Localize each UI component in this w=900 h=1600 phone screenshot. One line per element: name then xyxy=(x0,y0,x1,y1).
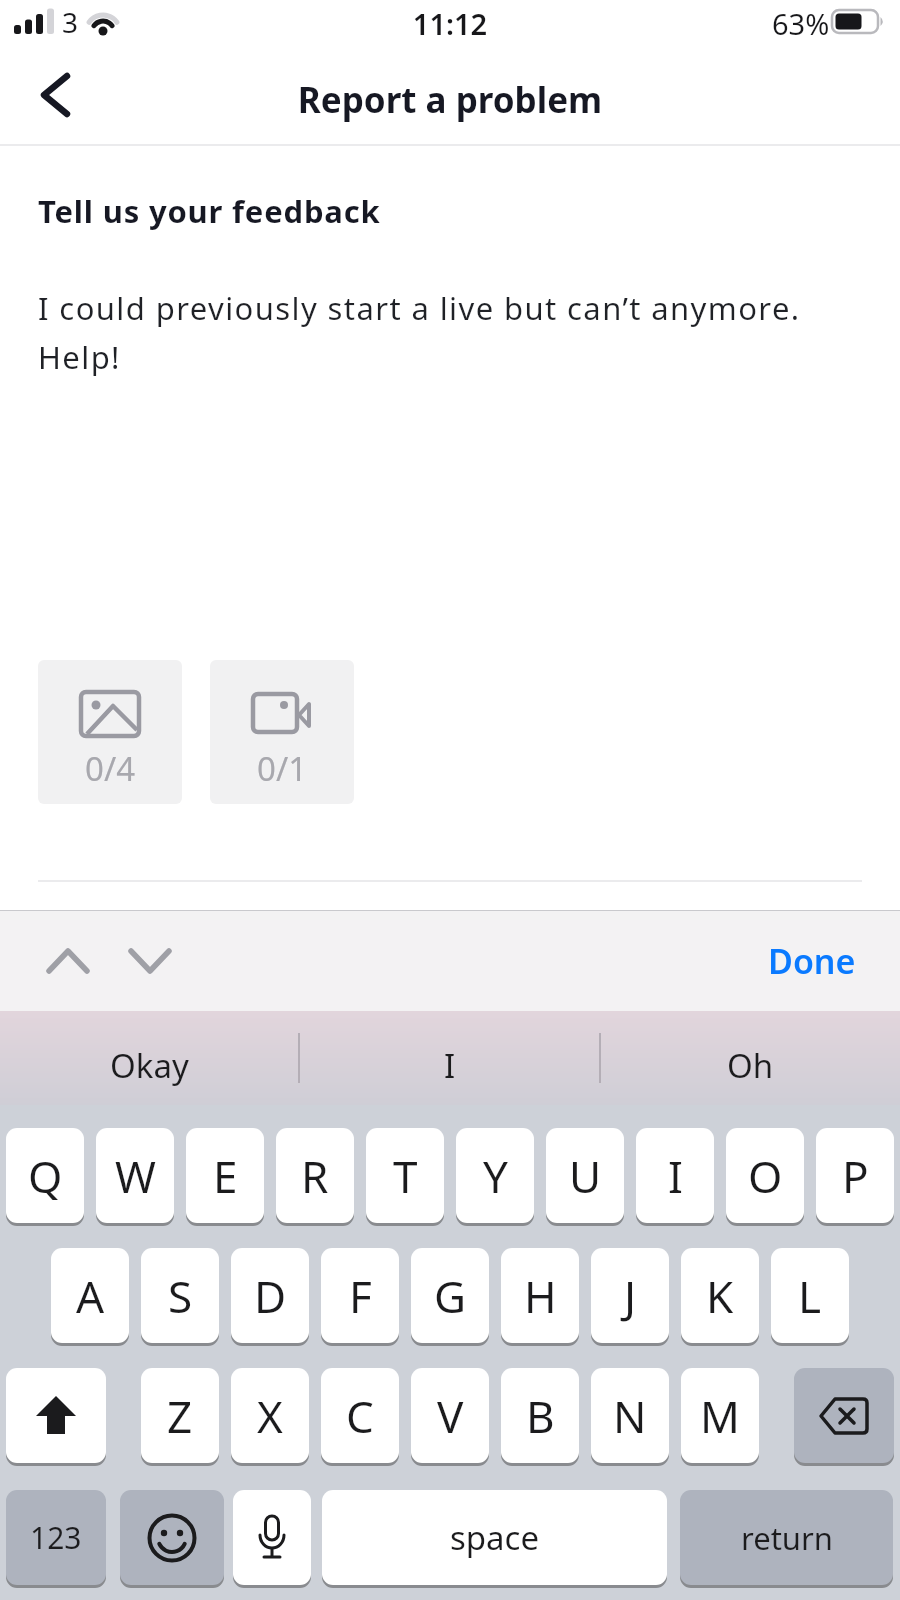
staticText: Okay xyxy=(110,1043,189,1088)
button[interactable]: space xyxy=(322,1490,667,1585)
staticText: Oh xyxy=(727,1043,774,1088)
button[interactable]: 0/4 xyxy=(38,660,182,804)
button[interactable]: 123 xyxy=(6,1490,106,1585)
button[interactable]: return xyxy=(680,1490,893,1585)
staticText: F xyxy=(349,1266,372,1326)
staticText: 123 xyxy=(30,1517,82,1558)
staticText: 11:12 xyxy=(0,4,900,43)
button[interactable]: Y xyxy=(456,1128,534,1223)
button[interactable]: Okay xyxy=(0,1011,298,1105)
staticText: U xyxy=(569,1146,602,1206)
staticText: Done xyxy=(768,938,856,984)
button[interactable] xyxy=(120,1490,224,1585)
staticText: C xyxy=(346,1386,374,1446)
button[interactable]: P xyxy=(816,1128,894,1223)
button[interactable]: Oh xyxy=(601,1011,900,1105)
button[interactable]: J xyxy=(591,1248,669,1343)
staticText: T xyxy=(393,1146,418,1206)
button[interactable]: C xyxy=(321,1368,399,1463)
staticText: J xyxy=(624,1266,637,1326)
staticText: Y xyxy=(483,1146,508,1206)
button[interactable] xyxy=(6,1368,106,1463)
staticText: I xyxy=(444,1043,456,1088)
staticText: M xyxy=(700,1386,740,1446)
staticText: I could previously start a live but can’… xyxy=(38,287,801,379)
button[interactable]: K xyxy=(681,1248,759,1343)
staticText: space xyxy=(450,1515,540,1560)
staticText: E xyxy=(213,1146,238,1206)
button[interactable]: V xyxy=(411,1368,489,1463)
button[interactable]: Z xyxy=(141,1368,219,1463)
staticText: S xyxy=(168,1266,193,1326)
button[interactable]: A xyxy=(51,1248,129,1343)
staticText: H xyxy=(524,1266,557,1326)
button[interactable]: Done xyxy=(768,938,856,984)
button[interactable]: O xyxy=(726,1128,804,1223)
button[interactable]: 0/1 xyxy=(210,660,354,804)
staticText: L xyxy=(798,1266,822,1326)
staticText: G xyxy=(434,1266,467,1326)
staticText: D xyxy=(254,1266,287,1326)
button[interactable]: W xyxy=(96,1128,174,1223)
button[interactable]: Q xyxy=(6,1128,84,1223)
staticText: W xyxy=(115,1146,156,1206)
staticText: Tell us your feedback xyxy=(38,190,381,232)
button[interactable]: N xyxy=(591,1368,669,1463)
staticText: Report a problem xyxy=(0,76,900,124)
button[interactable]: R xyxy=(276,1128,354,1223)
button[interactable]: L xyxy=(771,1248,849,1343)
staticText: Q xyxy=(28,1146,63,1206)
staticText: R xyxy=(301,1146,329,1206)
staticText: B xyxy=(526,1386,555,1446)
button[interactable]: D xyxy=(231,1248,309,1343)
staticText: X xyxy=(257,1386,283,1446)
staticText: I xyxy=(668,1146,683,1206)
staticText: 63% xyxy=(772,4,830,43)
staticText: N xyxy=(613,1386,647,1446)
button[interactable]: B xyxy=(501,1368,579,1463)
button[interactable]: I xyxy=(636,1128,714,1223)
staticText: Z xyxy=(167,1386,193,1446)
button[interactable] xyxy=(118,936,182,986)
button[interactable] xyxy=(233,1490,311,1585)
button[interactable]: U xyxy=(546,1128,624,1223)
staticText: P xyxy=(842,1146,869,1206)
button[interactable]: X xyxy=(231,1368,309,1463)
button[interactable]: E xyxy=(186,1128,264,1223)
staticText: A xyxy=(76,1266,105,1326)
staticText: V xyxy=(437,1386,464,1446)
button[interactable]: T xyxy=(366,1128,444,1223)
button[interactable]: I xyxy=(300,1011,599,1105)
button[interactable] xyxy=(20,60,90,130)
button[interactable]: S xyxy=(141,1248,219,1343)
staticText: K xyxy=(706,1266,734,1326)
button[interactable]: H xyxy=(501,1248,579,1343)
button[interactable]: G xyxy=(411,1248,489,1343)
staticText: 0/1 xyxy=(257,746,308,791)
staticText: 0/4 xyxy=(85,746,136,791)
button[interactable] xyxy=(36,936,100,986)
button[interactable]: M xyxy=(681,1368,759,1463)
staticText: return xyxy=(741,1517,833,1559)
button[interactable] xyxy=(794,1368,894,1463)
button[interactable]: F xyxy=(321,1248,399,1343)
staticText: 3 xyxy=(62,3,79,41)
staticText: O xyxy=(748,1146,783,1206)
